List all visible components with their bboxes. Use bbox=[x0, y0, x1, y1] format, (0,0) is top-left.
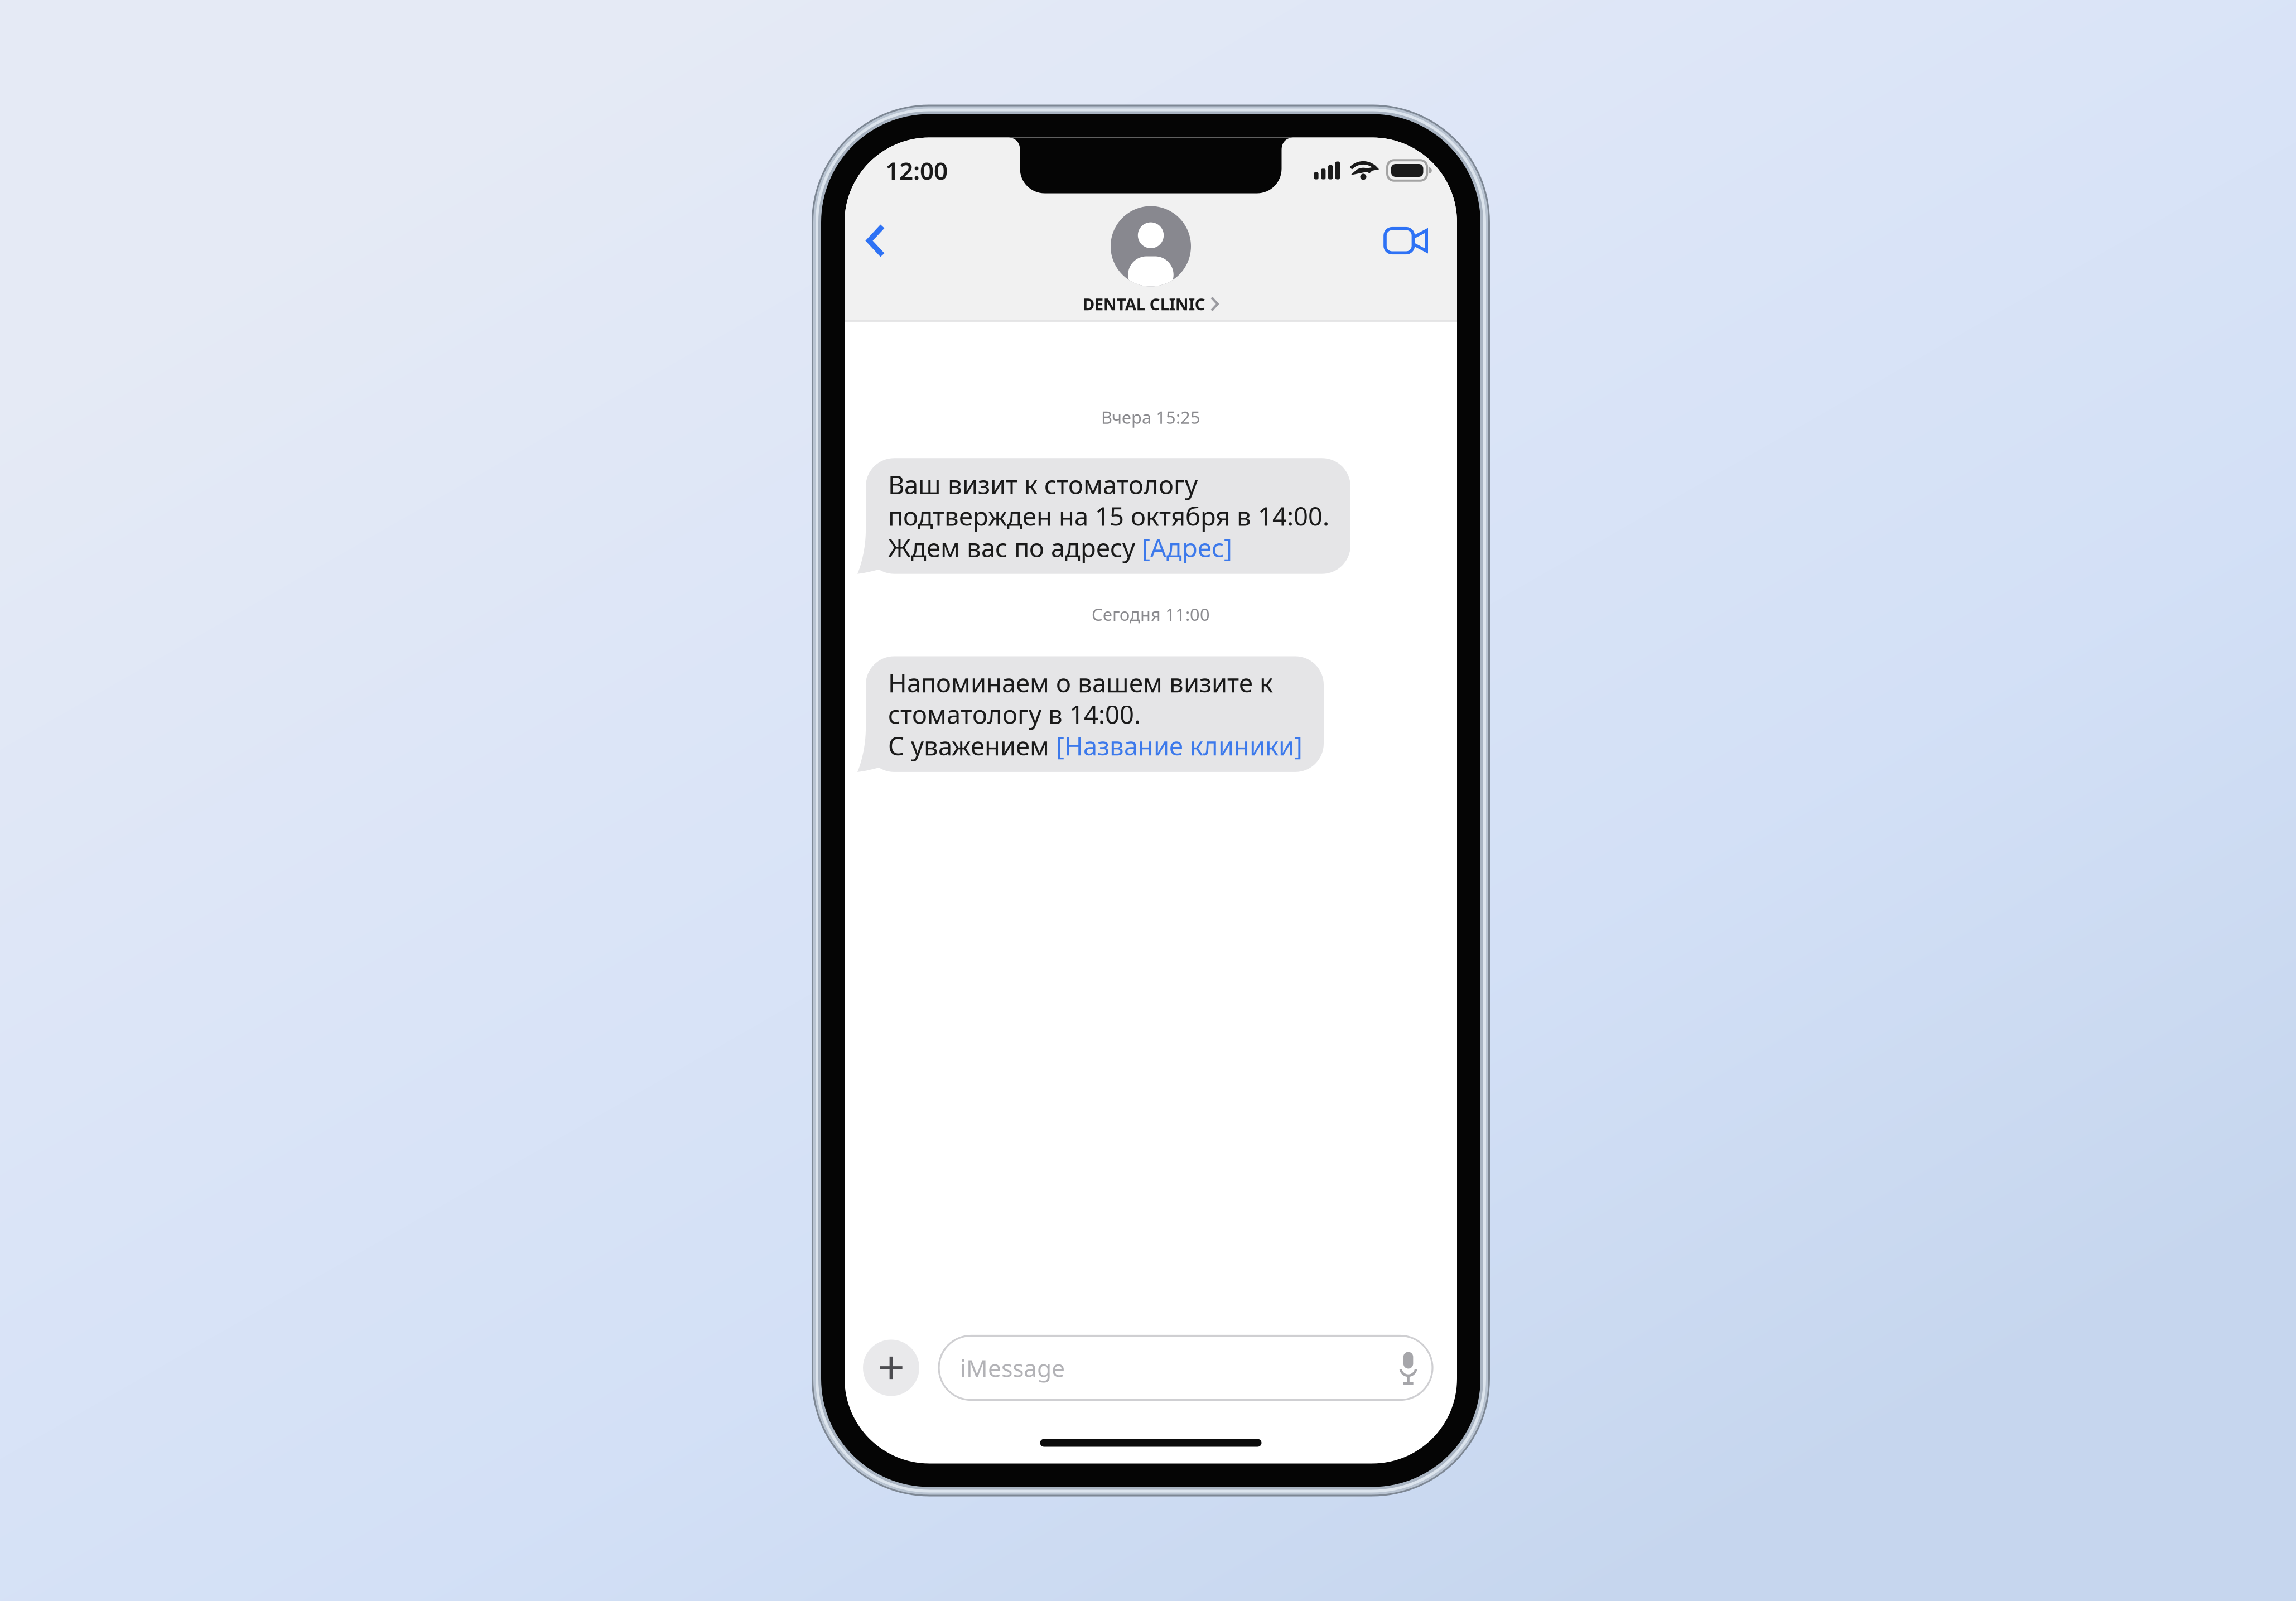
staticText: Ждем вас по адресу bbox=[888, 531, 1142, 564]
staticText: iMessage bbox=[960, 1352, 1065, 1384]
staticText: Сегодня 11:00 bbox=[1092, 603, 1210, 626]
staticText: 12:00 bbox=[885, 154, 948, 187]
staticText: С уважением bbox=[888, 729, 1056, 762]
staticText: [Название клиники] bbox=[1056, 729, 1303, 762]
button[interactable]: Back bbox=[845, 203, 904, 278]
staticText: стоматологу в 14:00. bbox=[888, 697, 1141, 731]
staticText: подтвержден на 15 октября в 14:00. bbox=[888, 499, 1329, 533]
staticText: DENTAL CLINIC bbox=[1083, 293, 1205, 315]
staticText: Вчера 15:25 bbox=[1101, 406, 1200, 429]
button[interactable]: FaceTime bbox=[1366, 208, 1457, 273]
button[interactable]: Add attachment bbox=[863, 1340, 919, 1396]
staticText: [Адрес] bbox=[1142, 531, 1232, 564]
button[interactable]: iMessage bbox=[939, 1336, 1432, 1400]
staticText: Ваш визит к стоматологу bbox=[888, 468, 1198, 501]
staticText: Напоминаем о вашем визите к bbox=[888, 666, 1273, 699]
